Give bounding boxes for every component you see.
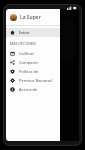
- button[interactable]: La Super Pamparda: [6, 9, 60, 25]
- staticText: Política de Privacidad: [19, 69, 56, 74]
- staticText: Acerca de: [19, 87, 38, 92]
- staticText: MÁS OPCIONES: [10, 41, 37, 46]
- other: Acerca de: [10, 87, 15, 92]
- staticText: nacional: [38, 80, 54, 85]
- button[interactable]: Política de Privacidad: [6, 67, 60, 76]
- other: Calificar: [10, 51, 15, 56]
- staticText: Permiso Nacional: [19, 78, 52, 83]
- button[interactable]: Permiso Nacional: [6, 76, 60, 85]
- other: Permiso Nacional: [10, 78, 15, 83]
- staticText: Inicio: [19, 30, 30, 35]
- other: Compartir: [10, 60, 15, 65]
- other: Inicio: [10, 30, 15, 35]
- button[interactable]: Inicio: [6, 28, 60, 37]
- button[interactable]: Compartir: [6, 58, 60, 67]
- other: Política de Privacidad: [10, 69, 15, 74]
- staticText: Calificar: [19, 51, 35, 56]
- staticText: La Super Pamparda: [20, 14, 56, 21]
- button[interactable]: Calificar: [6, 49, 60, 58]
- button[interactable]: Acerca de: [6, 85, 60, 94]
- staticText: Compartir: [19, 60, 39, 65]
